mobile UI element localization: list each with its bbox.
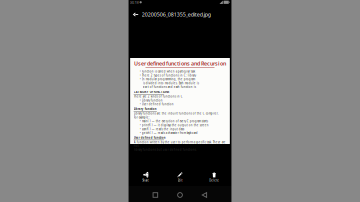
staticText: •	[140, 74, 141, 77]
staticText: CATEGORY OF FUNCTIONS	[134, 90, 169, 94]
staticText: 20200506_081355_edited.jpg	[142, 11, 211, 18]
staticText: In modular programming, the program	[142, 77, 195, 81]
staticText: There are 2 kinds of functions in C	[134, 95, 183, 98]
staticText: User defined function	[142, 102, 174, 106]
staticText: Library functions are the inbuilt functi…	[134, 112, 219, 115]
button[interactable]: Edit	[163, 166, 197, 186]
staticText: Function is called when a particular tas…	[142, 70, 195, 73]
staticText: main( ) — the execution of every C progr…	[142, 119, 208, 123]
staticText: •	[140, 123, 141, 127]
staticText: •	[140, 70, 141, 73]
staticText: a set of functions and each function is	[143, 85, 196, 89]
staticText: library functions but user defined funct…	[134, 148, 197, 151]
button[interactable]: Back	[195, 186, 215, 202]
staticText: •	[140, 77, 141, 81]
staticText: For example:	[134, 116, 150, 119]
staticText: Edit	[177, 179, 182, 182]
staticText: Delete	[209, 179, 219, 182]
staticText: printf( ) — it displays the output on th…	[142, 123, 209, 127]
staticText: getch( ) — reads a character from keyboa…	[142, 131, 198, 135]
button[interactable]: Share	[129, 166, 163, 186]
button[interactable]: Back	[129, 7, 142, 21]
staticText: There 2 types of functions in C: library	[142, 74, 196, 77]
staticText: •	[140, 119, 141, 123]
button[interactable]: Home	[170, 186, 190, 202]
staticText: •	[140, 102, 141, 106]
staticText: scanf( ) — reads the input data	[142, 127, 184, 131]
staticText: Share	[142, 179, 149, 182]
staticText: •	[140, 127, 141, 131]
staticText: A function written by the user to perfor…	[134, 140, 226, 147]
staticText: 04:18	[130, 0, 139, 5]
staticText: Library function	[142, 99, 163, 102]
staticText: User defined functions and Recursion	[134, 60, 226, 67]
button[interactable]: Delete	[197, 166, 231, 186]
staticText: •	[140, 131, 141, 135]
staticText: User defined function	[134, 136, 166, 139]
staticText: is divided into modules. Each module is	[143, 81, 199, 85]
staticText: Library function	[134, 107, 157, 111]
button[interactable]: Recent apps	[145, 186, 165, 202]
staticText: •	[140, 99, 141, 102]
